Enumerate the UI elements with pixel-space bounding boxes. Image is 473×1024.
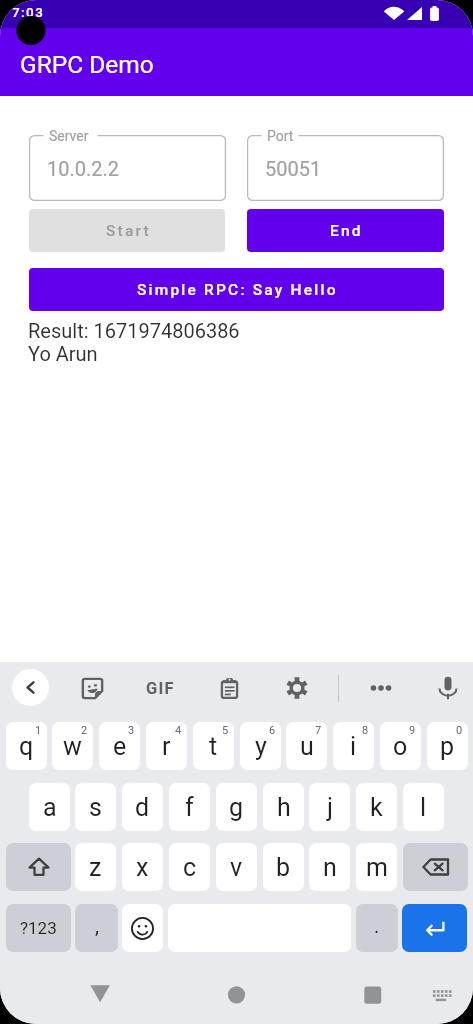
staticText: Result: 1671974806386 bbox=[28, 319, 240, 342]
staticText: h bbox=[277, 793, 291, 822]
button[interactable]: n bbox=[309, 843, 350, 891]
staticText: Start bbox=[106, 222, 151, 240]
staticText: z bbox=[89, 853, 102, 882]
button[interactable]: i bbox=[333, 722, 374, 770]
button[interactable]: Settings bbox=[277, 668, 317, 708]
staticText: , bbox=[95, 914, 99, 937]
button[interactable]: b bbox=[263, 843, 304, 891]
staticText: l bbox=[420, 793, 427, 822]
button[interactable]: GIF bbox=[140, 668, 180, 708]
staticText: s bbox=[89, 793, 102, 822]
button[interactable]: s bbox=[75, 783, 116, 831]
staticText: x bbox=[136, 853, 149, 882]
staticText: 50051 bbox=[265, 157, 322, 180]
button[interactable]: e bbox=[99, 722, 140, 770]
staticText: GRPC Demo bbox=[20, 50, 154, 79]
staticText: 7:03 bbox=[12, 4, 45, 20]
staticText: 0 bbox=[456, 724, 463, 737]
staticText: o bbox=[393, 732, 408, 761]
staticText: 8 bbox=[362, 724, 369, 737]
staticText: i bbox=[350, 732, 357, 761]
button[interactable]: Voice input bbox=[428, 668, 468, 708]
staticText: b bbox=[276, 853, 291, 882]
button[interactable]: p bbox=[427, 722, 468, 770]
button[interactable]: k bbox=[356, 783, 397, 831]
button[interactable]: Emoji bbox=[122, 904, 163, 952]
button[interactable]: z bbox=[75, 843, 116, 891]
staticText: g bbox=[229, 793, 244, 822]
staticText: y bbox=[255, 732, 267, 761]
button[interactable]: d bbox=[122, 783, 163, 831]
button[interactable]: Enter bbox=[402, 904, 467, 952]
button[interactable]: Clipboard bbox=[209, 668, 249, 708]
button[interactable]: End bbox=[247, 209, 444, 252]
staticText: 9 bbox=[409, 724, 416, 737]
button[interactable]: Server bbox=[29, 135, 226, 201]
button[interactable]: Simple RPC: Say Hello bbox=[29, 268, 444, 311]
button[interactable]: m bbox=[356, 843, 397, 891]
staticText: q bbox=[19, 732, 34, 761]
button[interactable]: h bbox=[263, 783, 304, 831]
staticText: u bbox=[300, 732, 314, 761]
button[interactable]: x bbox=[122, 843, 163, 891]
button[interactable]: q bbox=[6, 722, 47, 770]
staticText: r bbox=[162, 732, 171, 761]
staticText: f bbox=[185, 793, 194, 822]
button[interactable]: Home bbox=[214, 974, 258, 1016]
staticText: v bbox=[230, 853, 243, 882]
button[interactable]: Back bbox=[12, 669, 49, 706]
staticText: j bbox=[327, 793, 333, 822]
staticText: n bbox=[323, 853, 337, 882]
staticText: e bbox=[113, 732, 127, 761]
button[interactable]: . bbox=[356, 904, 398, 952]
staticText: 10.0.2.2 bbox=[47, 157, 120, 180]
staticText: 4 bbox=[175, 724, 182, 737]
staticText: ?123 bbox=[20, 918, 57, 938]
button[interactable]: w bbox=[52, 722, 93, 770]
button[interactable]: Start bbox=[29, 209, 225, 252]
button[interactable]: Recent apps bbox=[351, 974, 395, 1016]
button[interactable]: l bbox=[403, 783, 444, 831]
staticText: 6 bbox=[269, 724, 276, 737]
staticText: w bbox=[63, 732, 82, 761]
staticText: 1 bbox=[35, 724, 42, 737]
staticText: p bbox=[440, 732, 455, 761]
staticText: 5 bbox=[222, 724, 229, 737]
button[interactable]: t bbox=[193, 722, 234, 770]
button[interactable]: u bbox=[286, 722, 327, 770]
button[interactable]: c bbox=[169, 843, 210, 891]
button[interactable]: a bbox=[29, 783, 70, 831]
button[interactable]: f bbox=[169, 783, 210, 831]
button[interactable]: ?123 bbox=[6, 904, 71, 952]
button[interactable]: j bbox=[309, 783, 350, 831]
button[interactable]: Stickers bbox=[72, 668, 112, 708]
button[interactable]: y bbox=[240, 722, 281, 770]
button[interactable]: Switch keyboard bbox=[419, 974, 463, 1016]
staticText: Yo Arun bbox=[28, 342, 98, 365]
staticText: 3 bbox=[128, 724, 135, 737]
staticText: k bbox=[370, 793, 383, 822]
button[interactable]: v bbox=[216, 843, 257, 891]
button[interactable]: Shift bbox=[6, 843, 71, 891]
button[interactable]: r bbox=[146, 722, 187, 770]
staticText: End bbox=[330, 222, 363, 240]
staticText: 7 bbox=[315, 724, 322, 737]
button[interactable]: Port bbox=[247, 135, 444, 201]
staticText: Server bbox=[49, 128, 89, 144]
staticText: . bbox=[374, 914, 380, 937]
button[interactable]: Back bbox=[78, 974, 122, 1016]
button[interactable]: o bbox=[380, 722, 421, 770]
staticText: c bbox=[183, 853, 197, 882]
button[interactable]: g bbox=[216, 783, 257, 831]
staticText: Simple RPC: Say Hello bbox=[137, 281, 338, 299]
staticText: a bbox=[43, 793, 57, 822]
staticText: m bbox=[366, 853, 388, 882]
button[interactable]: Backspace bbox=[403, 843, 468, 891]
staticText: GIF bbox=[146, 679, 175, 698]
staticText: Port bbox=[267, 128, 294, 144]
staticText: t bbox=[209, 732, 218, 761]
button[interactable]: , bbox=[75, 904, 118, 952]
button[interactable]: More options bbox=[361, 668, 401, 708]
staticText: d bbox=[135, 793, 150, 822]
